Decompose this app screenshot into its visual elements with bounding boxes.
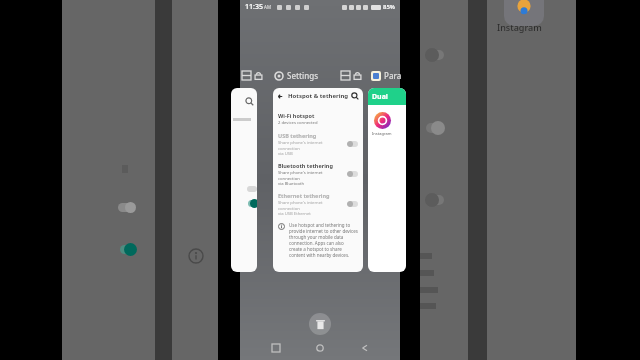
- staticText: Wi-Fi hotspot: [278, 112, 315, 119]
- button[interactable]: Split screen: [341, 71, 350, 80]
- staticText: Use hotspot and tethering to provide int…: [289, 222, 358, 258]
- staticText: AM: [264, 4, 271, 10]
- button[interactable]: Recent apps: [267, 339, 285, 357]
- button[interactable]: Bluetooth tethering: [273, 159, 363, 189]
- button[interactable]: Lock app: [254, 71, 263, 80]
- staticText: Ethernet tethering: [278, 192, 330, 199]
- button[interactable]: Clear all recent apps: [309, 313, 331, 335]
- staticText: Hotspot & tethering: [288, 92, 349, 100]
- staticText: Dual Apps: [372, 92, 406, 102]
- button[interactable]: Home: [311, 339, 329, 357]
- staticText: Settings: [287, 70, 319, 81]
- staticText: Share phone's internet connection via US…: [278, 140, 344, 156]
- staticText: Bluetooth tethering: [278, 162, 333, 169]
- staticText: Para: [384, 70, 402, 81]
- staticText: Instagram: [497, 21, 542, 33]
- button[interactable]: Wi-Fi hotspot: [273, 109, 363, 129]
- button[interactable]: USB tethering: [273, 129, 363, 159]
- staticText: Instagram: [372, 131, 392, 136]
- staticText: USB tethering: [278, 132, 317, 139]
- button[interactable]: Lock app: [353, 71, 362, 80]
- staticText: Share phone's internet connection via US…: [278, 200, 344, 216]
- button[interactable]: Back: [273, 88, 363, 272]
- staticText: 11:35: [245, 2, 263, 12]
- button[interactable]: Ethernet tethering: [273, 189, 363, 219]
- button[interactable]: Dual Apps: [368, 88, 406, 272]
- button[interactable]: Search: [351, 92, 359, 100]
- staticText: 85%: [383, 3, 395, 11]
- staticText: 2 devices connected: [278, 120, 318, 126]
- staticText: Share phone's internet connection via Bl…: [278, 170, 344, 186]
- button[interactable]: [231, 88, 257, 272]
- button[interactable]: Split screen: [242, 71, 251, 80]
- button[interactable]: Back: [277, 93, 284, 100]
- button[interactable]: Back: [356, 339, 374, 357]
